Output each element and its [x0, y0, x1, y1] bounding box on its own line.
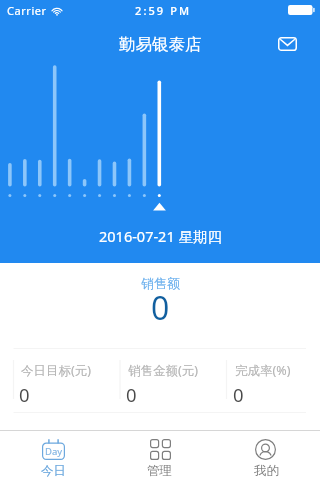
button[interactable]: Day: [0, 430, 106, 480]
button[interactable]: 管理: [106, 430, 213, 480]
staticText: 0: [151, 286, 170, 330]
button[interactable]: 我的: [213, 430, 320, 480]
staticText: 完成率(%): [235, 362, 291, 379]
button[interactable]: 完成率(%): [228, 348, 320, 414]
staticText: 我的: [254, 463, 279, 479]
button[interactable]: 销售金额(元): [121, 348, 228, 414]
staticText: 0: [126, 382, 137, 407]
staticText: 今日: [41, 463, 66, 479]
staticText: Day: [45, 445, 63, 458]
staticText: 2016-07-21 星期四: [99, 226, 222, 246]
staticText: 2:59 PM: [135, 3, 192, 18]
button[interactable]: 今日目标(元): [14, 348, 121, 414]
staticText: Carrier: [7, 3, 47, 18]
staticText: 管理: [147, 463, 172, 479]
staticText: 销售额: [141, 275, 180, 291]
staticText: 勤易银泰店: [119, 34, 202, 55]
staticText: 0: [19, 382, 30, 407]
staticText: 今日目标(元): [21, 362, 92, 379]
staticText: 0: [233, 382, 244, 407]
button[interactable]: Messages: [273, 32, 301, 56]
staticText: 销售金额(元): [128, 362, 199, 379]
